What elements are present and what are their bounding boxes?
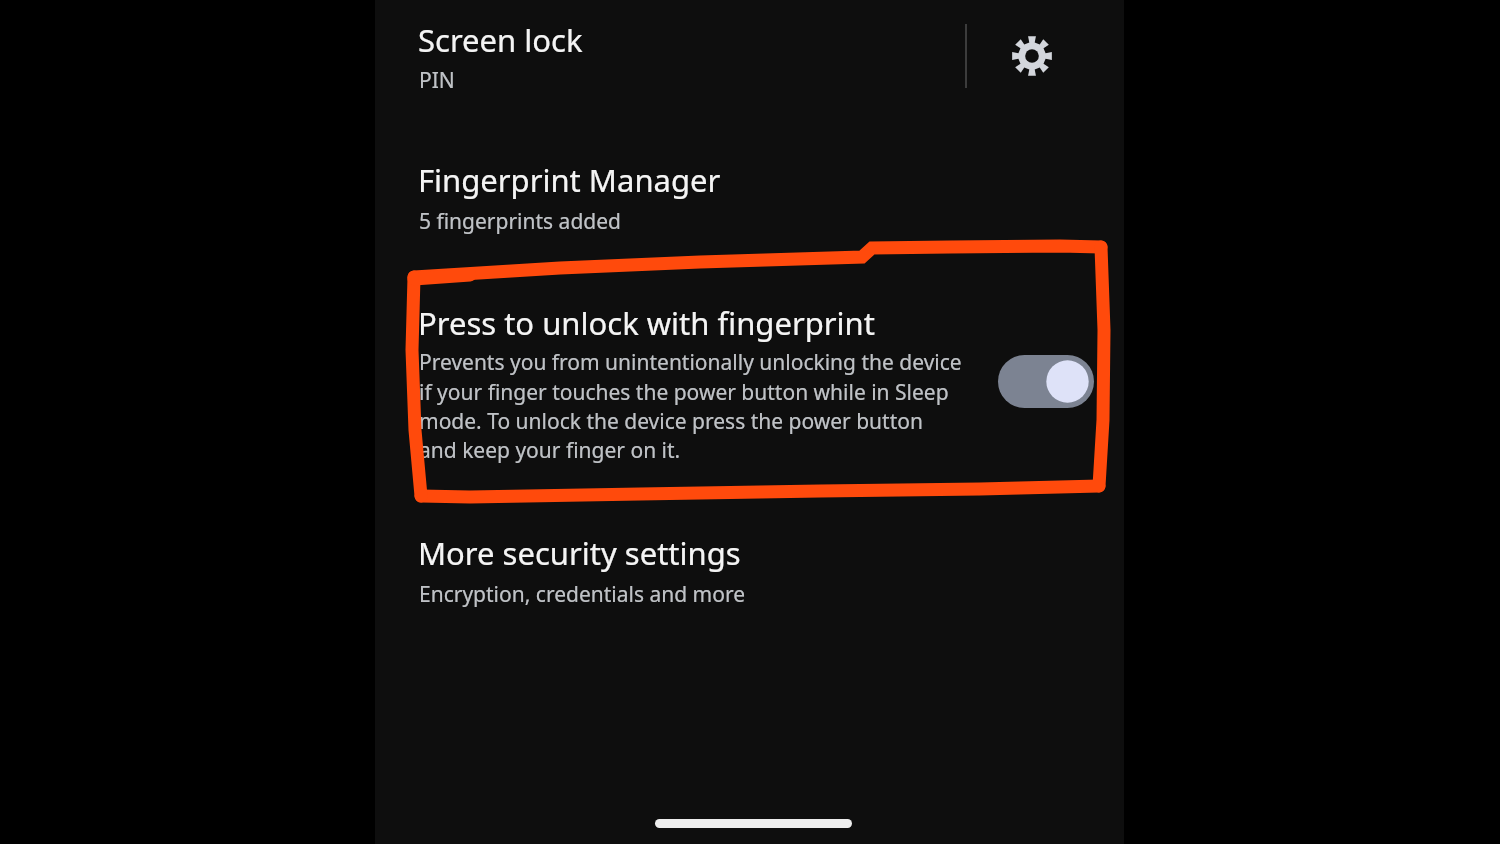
staticText: Screen lock <box>418 19 583 61</box>
button[interactable]: Press to unlock with fingerprint toggle <box>994 348 1098 414</box>
button[interactable]: Fingerprint Manager <box>375 145 1124 245</box>
staticText: PIN <box>419 66 455 95</box>
staticText: 5 fingerprints added <box>419 207 621 236</box>
button[interactable]: Screen lock settings <box>987 11 1075 101</box>
button[interactable]: Press to unlock with fingerprint <box>375 288 1124 478</box>
staticText: More security settings <box>418 532 741 574</box>
staticText: Press to unlock with fingerprint <box>418 302 875 344</box>
button[interactable]: More security settings <box>375 518 1124 616</box>
staticText: Fingerprint Manager <box>418 159 721 201</box>
staticText: Encryption, credentials and more <box>419 580 746 609</box>
button[interactable]: Screen lock <box>375 0 965 112</box>
staticText: Prevents you from unintentionally unlock… <box>419 348 964 464</box>
